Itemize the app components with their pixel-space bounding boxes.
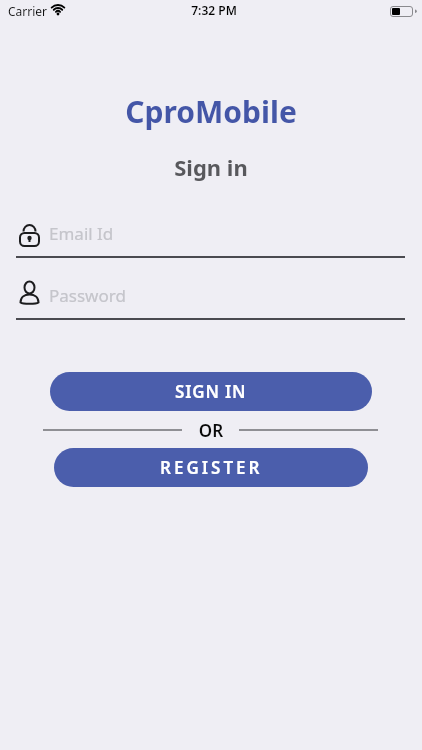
staticText: Carrier (8, 3, 48, 19)
button[interactable]: SIGN IN (50, 372, 372, 411)
staticText: Sign in (0, 152, 422, 182)
staticText: OR (0, 419, 422, 442)
staticText: Password (49, 284, 126, 307)
staticText: SIGN IN (175, 380, 247, 403)
staticText: REGISTER (160, 456, 263, 479)
button[interactable]: REGISTER (54, 448, 368, 487)
button[interactable]: Email Id (16, 215, 405, 251)
staticText: 7:32 PM (3, 2, 422, 18)
button[interactable]: Password (16, 277, 405, 313)
staticText: Email Id (49, 222, 114, 245)
staticText: CproMobile (0, 91, 422, 132)
